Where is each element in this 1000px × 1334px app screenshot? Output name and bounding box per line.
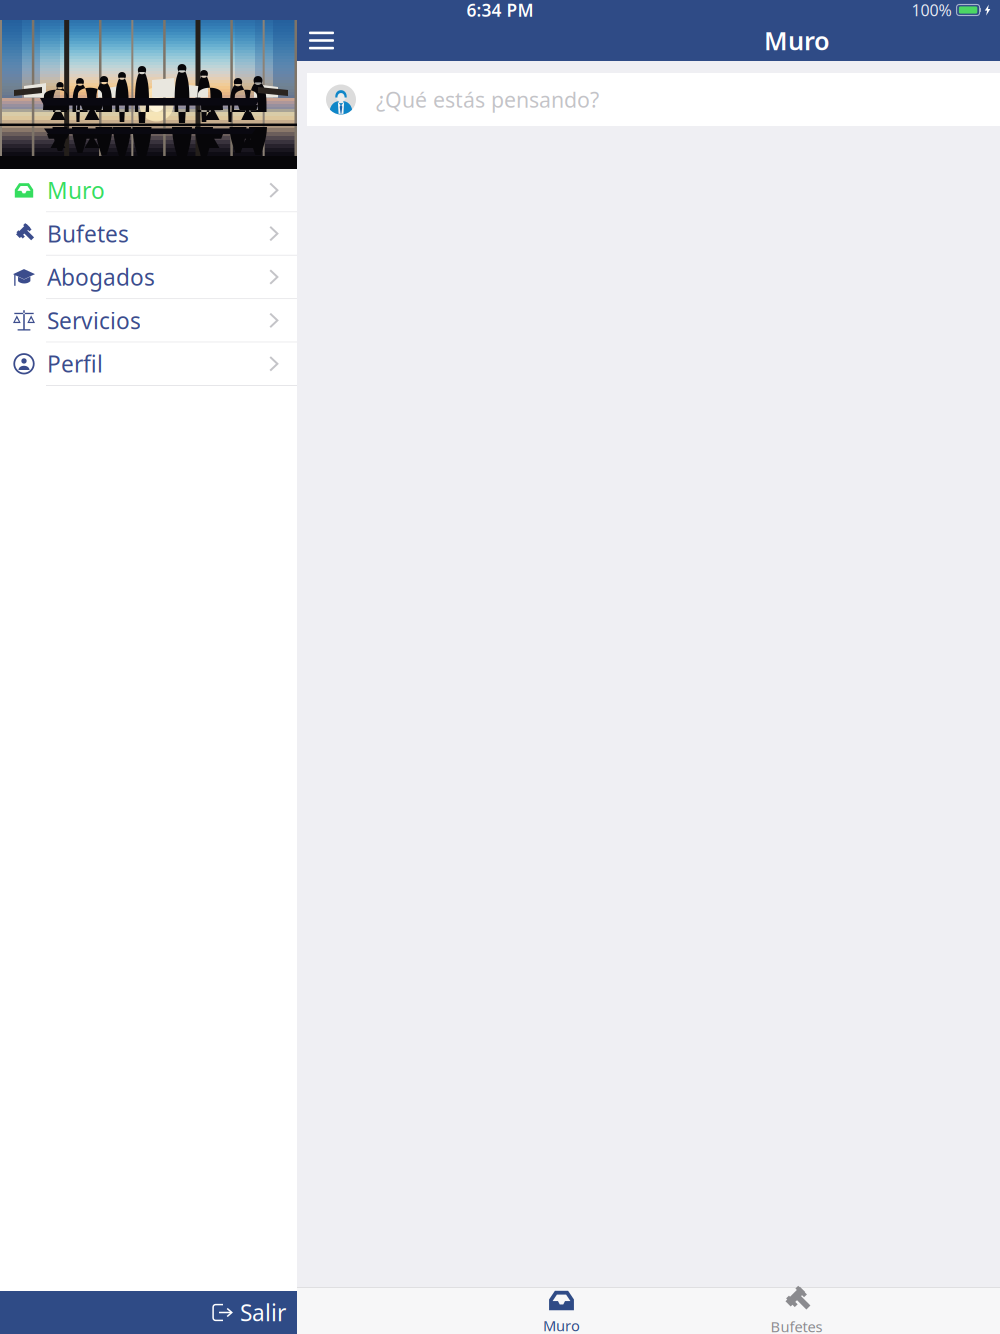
staticText: Abogados xyxy=(47,262,155,292)
staticText: Servicios xyxy=(47,305,141,335)
staticText: Bufetes xyxy=(47,218,129,249)
button[interactable]: Servicios xyxy=(0,299,297,343)
staticText: 100% xyxy=(912,0,952,21)
button[interactable]: Bufetes xyxy=(0,212,297,256)
staticText: 6:34 PM xyxy=(466,0,533,21)
button[interactable]: Menu xyxy=(297,20,346,61)
staticText: Muro xyxy=(764,24,830,57)
button[interactable]: Muro xyxy=(0,169,297,212)
staticText: Muro xyxy=(543,1316,580,1334)
button[interactable]: Abogados xyxy=(0,256,297,299)
staticText: Salir xyxy=(240,1297,286,1327)
staticText: Perfil xyxy=(47,349,103,379)
button[interactable]: Salir xyxy=(0,1291,297,1334)
button[interactable]: Bufetes xyxy=(679,1288,914,1334)
staticText: ¿Qué estás pensando? xyxy=(376,85,599,114)
staticText: Muro xyxy=(47,175,105,205)
staticText: Bufetes xyxy=(770,1317,822,1334)
button[interactable]: Perfil xyxy=(0,343,297,386)
button[interactable]: Muro xyxy=(444,1288,679,1334)
